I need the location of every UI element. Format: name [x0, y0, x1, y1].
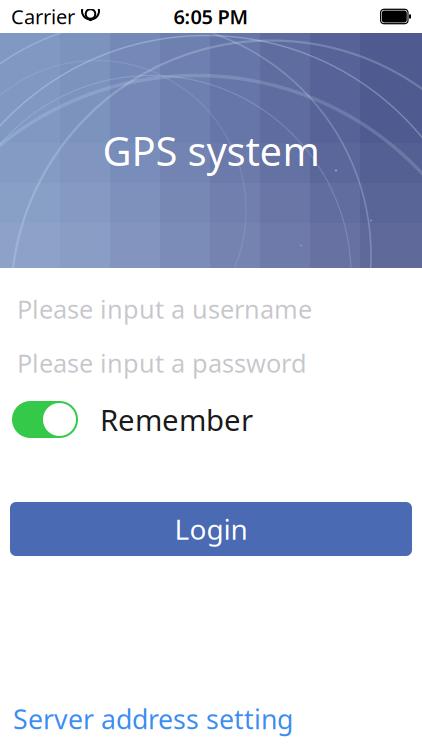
staticText: 6:05 PM [173, 3, 248, 30]
button[interactable]: Login [10, 502, 412, 556]
staticText: Please input a username [17, 292, 312, 326]
staticText: Login [174, 510, 247, 548]
button[interactable]: Remember [12, 401, 78, 438]
button[interactable]: Server address setting [0, 697, 422, 741]
staticText: Server address setting [13, 701, 293, 737]
staticText: Please input a password [17, 346, 307, 380]
staticText: Carrier [11, 3, 75, 30]
staticText: GPS system [102, 124, 319, 177]
staticText: Remember [100, 400, 253, 439]
